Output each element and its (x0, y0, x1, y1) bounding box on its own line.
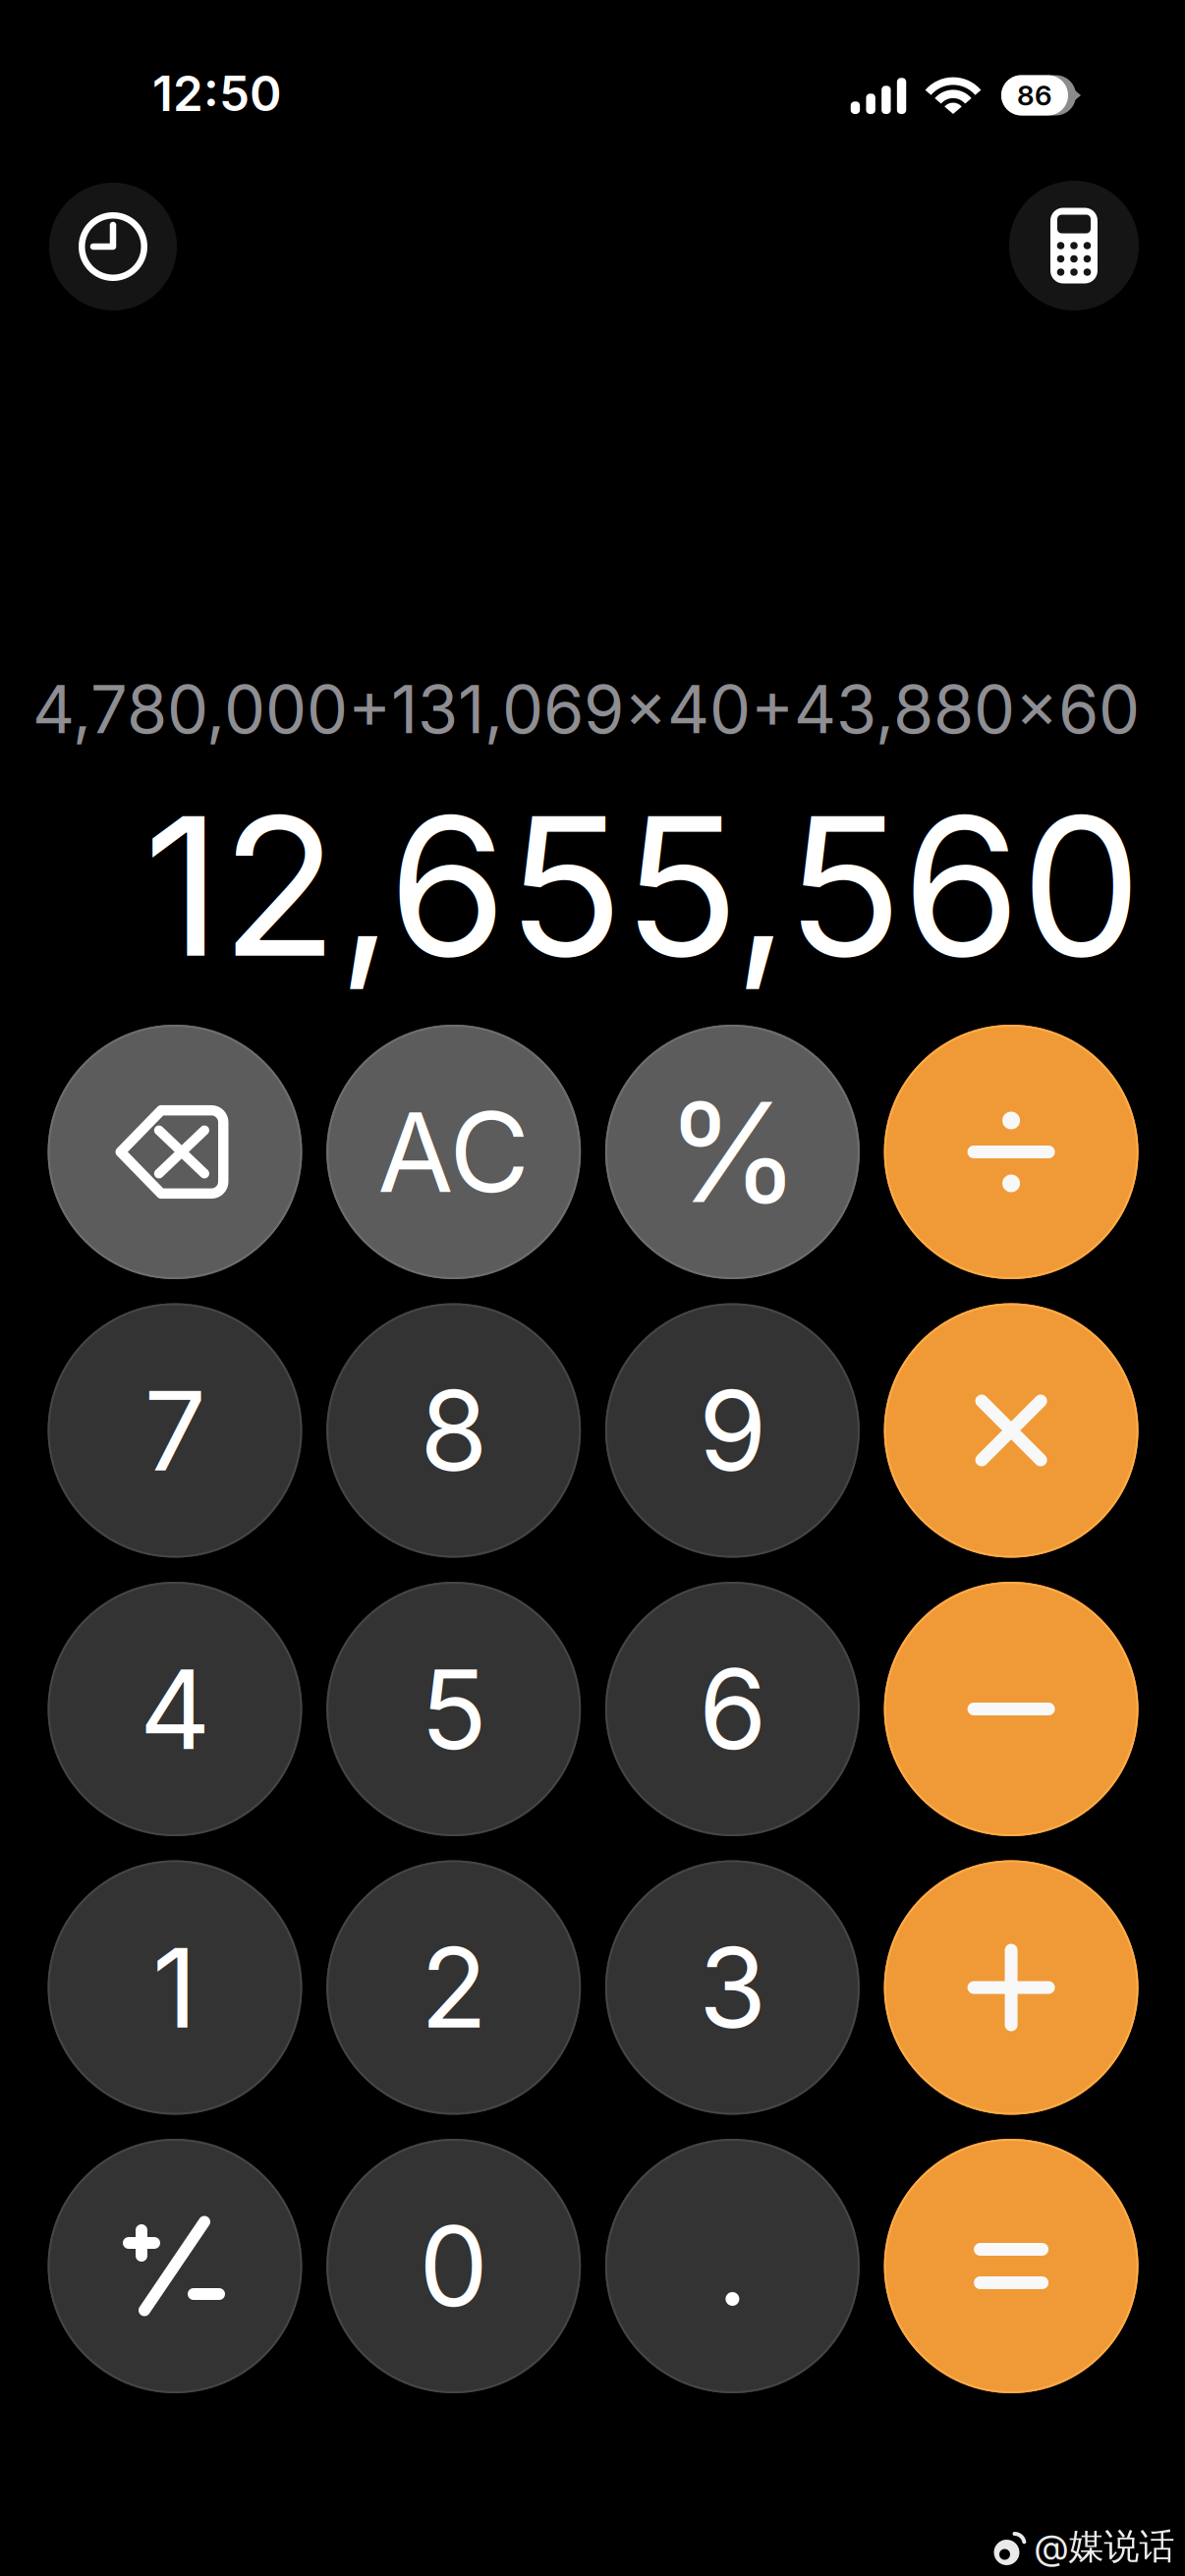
button[interactable]: 2 (326, 1860, 581, 2115)
staticText: 0 (419, 2199, 489, 2333)
button[interactable]: AC (326, 1025, 581, 1279)
button[interactable]: 0 (326, 2139, 581, 2393)
staticText: 2 (420, 1921, 487, 2054)
staticText: 86 (1017, 79, 1052, 112)
button[interactable]: 8 (326, 1303, 581, 1558)
button[interactable]: 1 (48, 1860, 302, 2115)
button[interactable]: Add (884, 1860, 1138, 2115)
button[interactable]: Decimal point (605, 2139, 860, 2393)
staticText: 3 (699, 1921, 766, 2054)
button[interactable]: Plus minus (48, 2139, 302, 2393)
button[interactable]: 4 (48, 1582, 302, 1836)
staticText: 12:50 (152, 64, 282, 123)
button[interactable]: Subtract (884, 1582, 1138, 1836)
staticText: % (665, 1069, 800, 1235)
button[interactable]: 5 (326, 1582, 581, 1836)
staticText: @媒说话 (1034, 2524, 1175, 2569)
button[interactable]: History (49, 183, 177, 310)
staticText: AC (378, 1085, 530, 1218)
button[interactable]: 9 (605, 1303, 860, 1558)
button[interactable]: Delete (48, 1025, 302, 1279)
button[interactable]: Calculator mode (1009, 181, 1139, 310)
button[interactable]: Divide (884, 1025, 1138, 1279)
button[interactable]: 3 (605, 1860, 860, 2115)
staticText: 8 (420, 1364, 488, 1497)
staticText: 12,655,560 (143, 770, 1142, 1002)
staticText: 4 (140, 1642, 210, 1775)
button[interactable]: Equals (884, 2139, 1138, 2393)
button[interactable]: 6 (605, 1582, 860, 1836)
button[interactable]: % (605, 1025, 860, 1279)
staticText: 4,780,000+131,069×40+43,880×60 (32, 670, 1140, 749)
staticText: 1 (152, 1921, 197, 2054)
staticText: 9 (699, 1364, 766, 1497)
staticText: 6 (699, 1642, 766, 1775)
button[interactable]: Multiply (884, 1303, 1138, 1558)
button[interactable]: 7 (48, 1303, 302, 1558)
staticText: 7 (144, 1364, 206, 1497)
staticText: 5 (420, 1642, 487, 1775)
